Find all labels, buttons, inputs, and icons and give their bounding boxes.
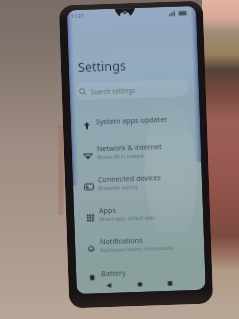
staticText: System apps updater <box>96 114 168 126</box>
button[interactable] <box>76 259 206 293</box>
staticText: Apps <box>99 205 116 215</box>
staticText: Battery <box>101 267 126 278</box>
staticText: Notification history, conversations <box>100 245 174 253</box>
staticText: Recent apps, default apps <box>99 214 155 222</box>
staticText: Mobile, Wi-Fi, hotspot <box>97 153 144 160</box>
staticText: Bluetooth, pairing <box>98 184 138 191</box>
staticText: Notifications <box>100 235 143 246</box>
button[interactable] <box>74 199 204 233</box>
button[interactable] <box>73 168 203 202</box>
staticText: Network & internet <box>97 141 162 153</box>
staticText: 11:23 <box>71 13 84 20</box>
button[interactable] <box>70 107 200 141</box>
button[interactable]: Recents <box>162 276 177 290</box>
button[interactable] <box>71 137 201 171</box>
button[interactable] <box>75 230 205 264</box>
button[interactable]: Search settings <box>75 79 189 100</box>
staticText: Connected devices <box>98 172 161 184</box>
button[interactable]: Back <box>101 278 116 292</box>
staticText: Search settings <box>91 86 136 96</box>
button[interactable]: Home <box>132 277 147 291</box>
staticText: Settings <box>78 57 126 76</box>
